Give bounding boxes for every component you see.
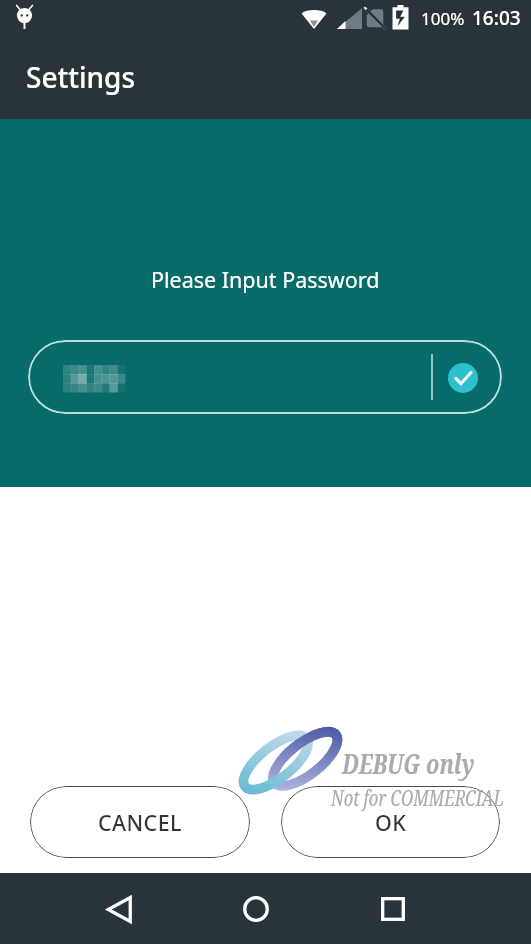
staticText: OK [375, 808, 407, 837]
staticText: DEBUG only [342, 744, 474, 782]
button[interactable]: Confirm password [28, 340, 502, 414]
staticText: Not for COMMERCIAL [331, 784, 504, 813]
staticText: Please Input Password [151, 265, 380, 294]
staticText: CANCEL [98, 808, 182, 837]
staticText: Settings [26, 58, 136, 96]
button[interactable]: Home [224, 876, 288, 942]
button[interactable]: Recent apps [361, 876, 425, 942]
button[interactable]: OK [281, 786, 500, 858]
staticText: 16:03 [472, 5, 521, 31]
button[interactable]: CANCEL [30, 786, 250, 858]
button[interactable]: Confirm password [448, 363, 478, 393]
staticText: 100% [421, 7, 465, 30]
button[interactable]: Back [87, 876, 151, 942]
